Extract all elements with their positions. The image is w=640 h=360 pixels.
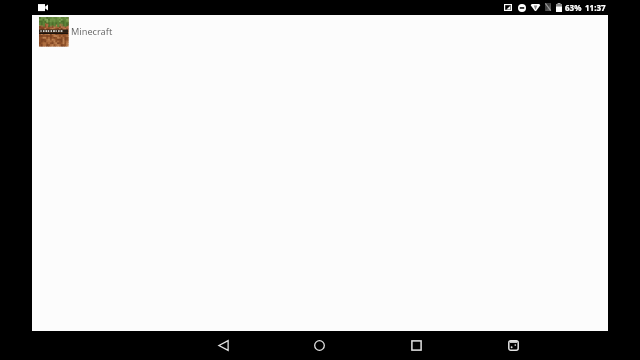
button[interactable]: Screenshot bbox=[499, 331, 528, 360]
button[interactable]: Recents bbox=[402, 331, 431, 360]
staticText: Minecraft bbox=[71, 25, 113, 38]
button[interactable]: Home bbox=[305, 331, 334, 360]
staticText: 11:37 bbox=[585, 2, 606, 13]
staticText: 63% bbox=[565, 2, 582, 13]
button[interactable]: Minecraft bbox=[32, 15, 608, 48]
button[interactable]: Back bbox=[209, 331, 238, 360]
